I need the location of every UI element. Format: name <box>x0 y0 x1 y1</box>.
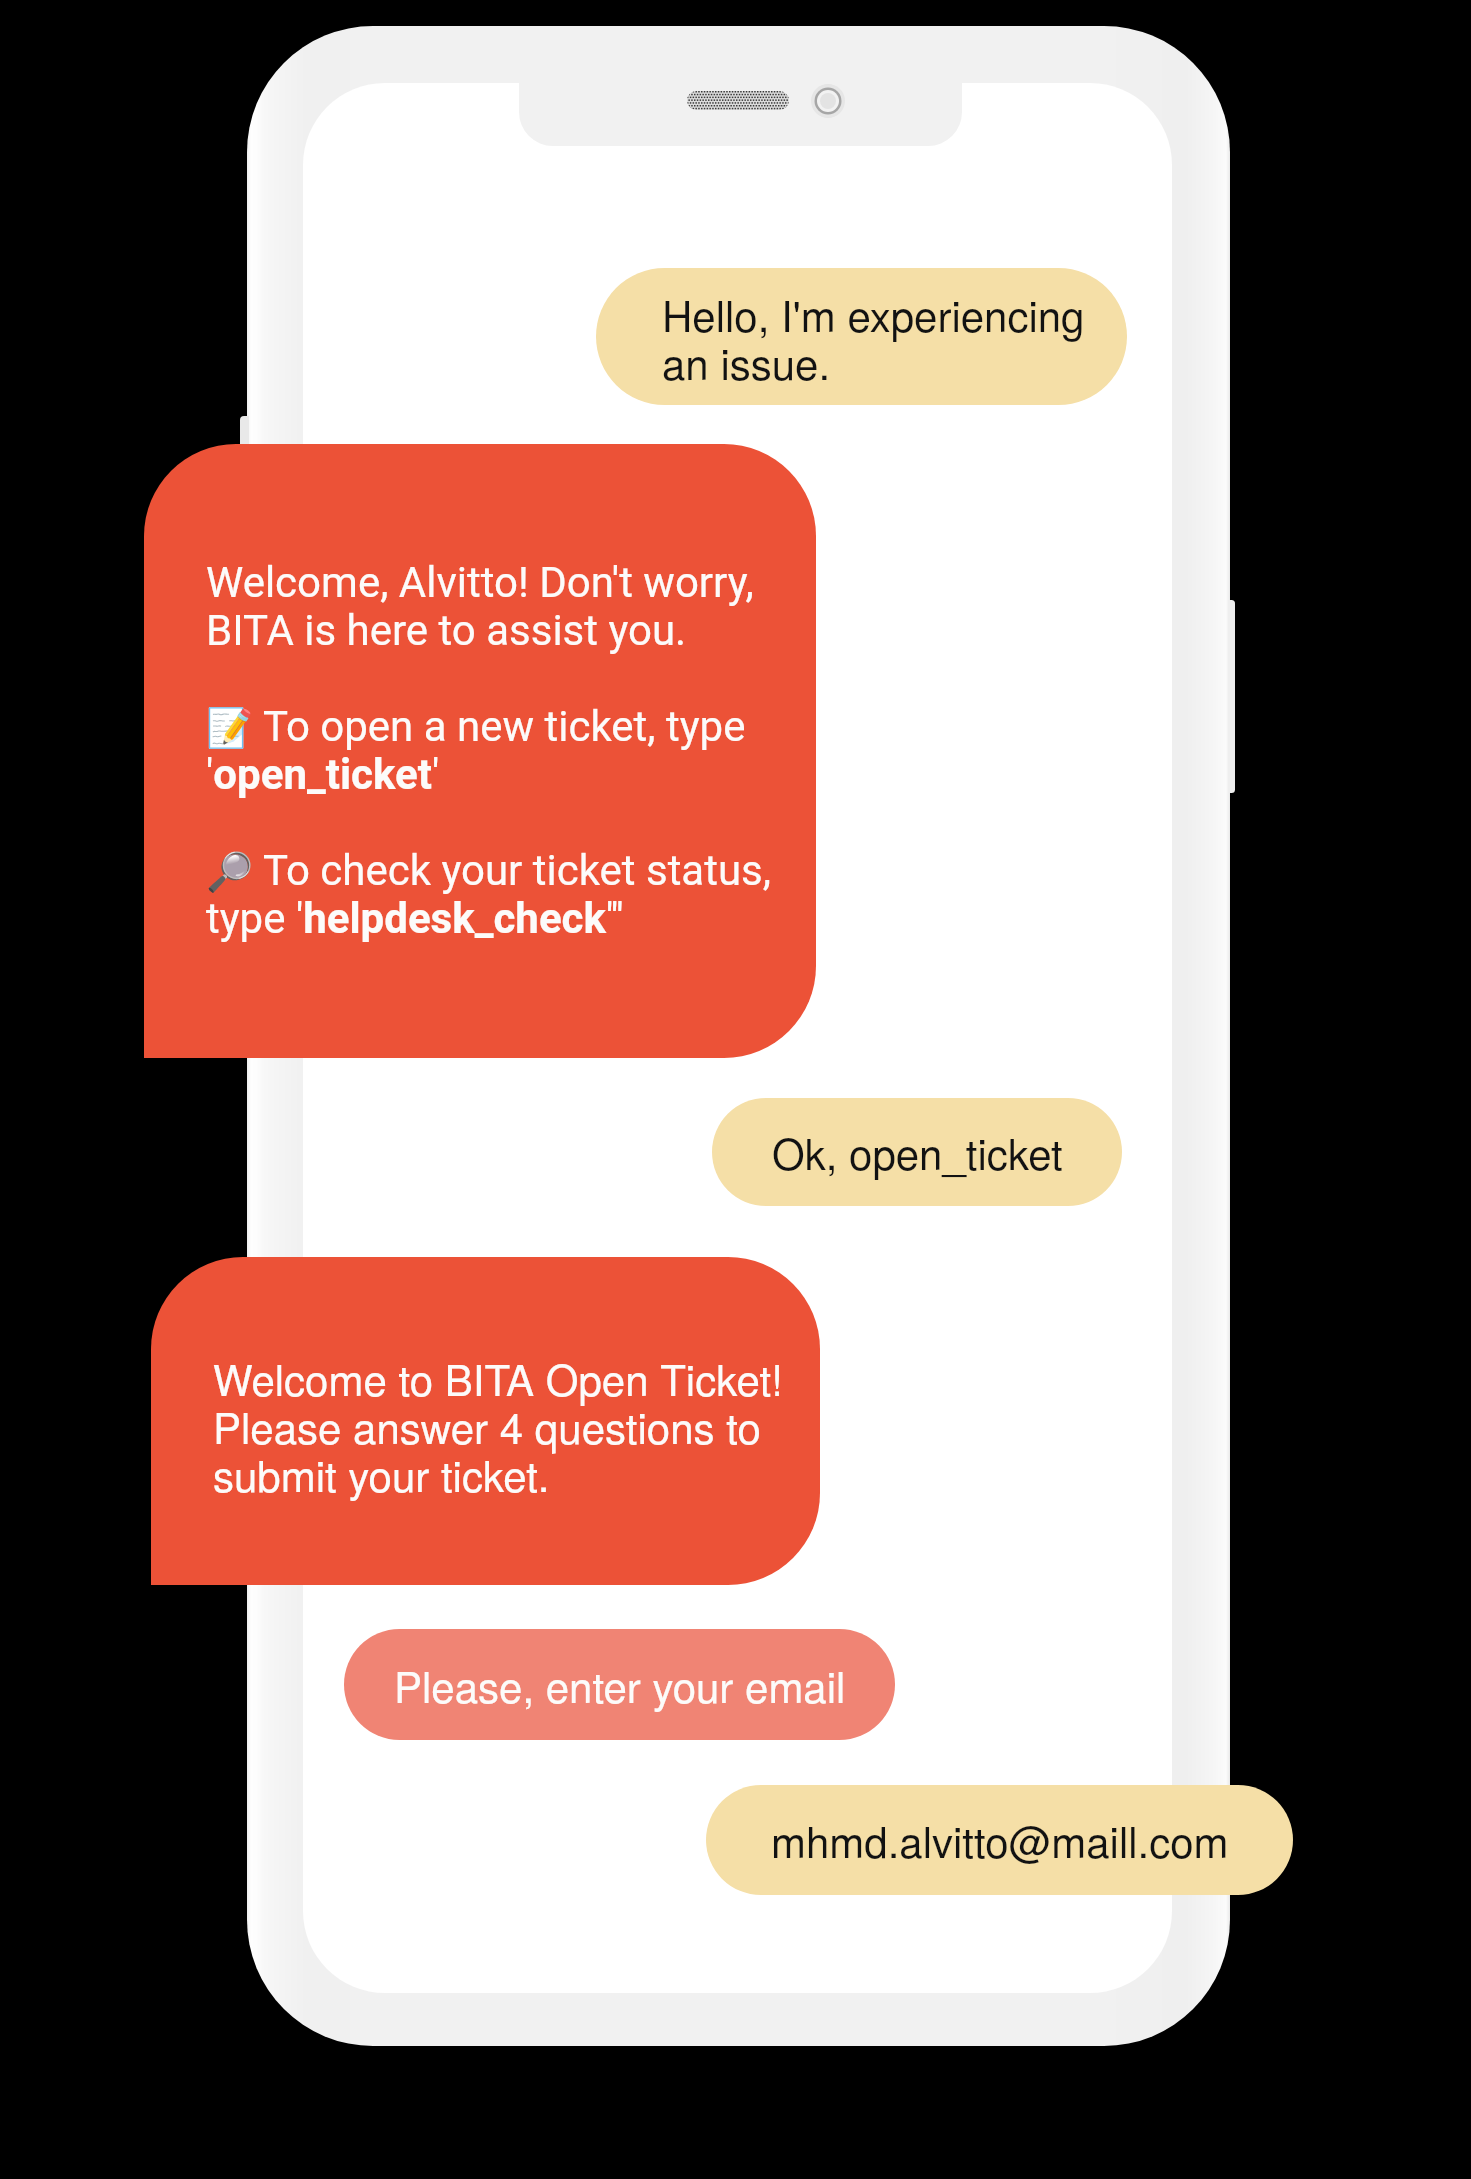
button[interactable]: Welcome to BITA Open Ticket! Please answ… <box>151 1257 820 1585</box>
button[interactable]: Hello, I'm experiencing an issue. <box>596 268 1127 405</box>
staticText: Welcome to BITA Open Ticket! Please answ… <box>213 1348 783 1504</box>
staticText: Hello, I'm experiencing an issue. <box>662 284 1085 392</box>
staticText: Welcome, Alvitto! Don't worry, BITA is h… <box>206 558 772 943</box>
staticText: Please, enter your email <box>394 1655 846 1715</box>
button[interactable]: Ok, open_ticket <box>712 1098 1122 1206</box>
button[interactable]: Please, enter your email <box>344 1629 895 1740</box>
staticText: Ok, open_ticket <box>772 1122 1063 1182</box>
button[interactable]: Welcome, Alvitto! Don't worry, BITA is h… <box>144 444 816 1058</box>
staticText: mhmd.alvitto@maill.com <box>771 1810 1229 1870</box>
other: Earpiece and front camera <box>519 70 962 146</box>
button[interactable]: mhmd.alvitto@maill.com <box>706 1785 1293 1895</box>
